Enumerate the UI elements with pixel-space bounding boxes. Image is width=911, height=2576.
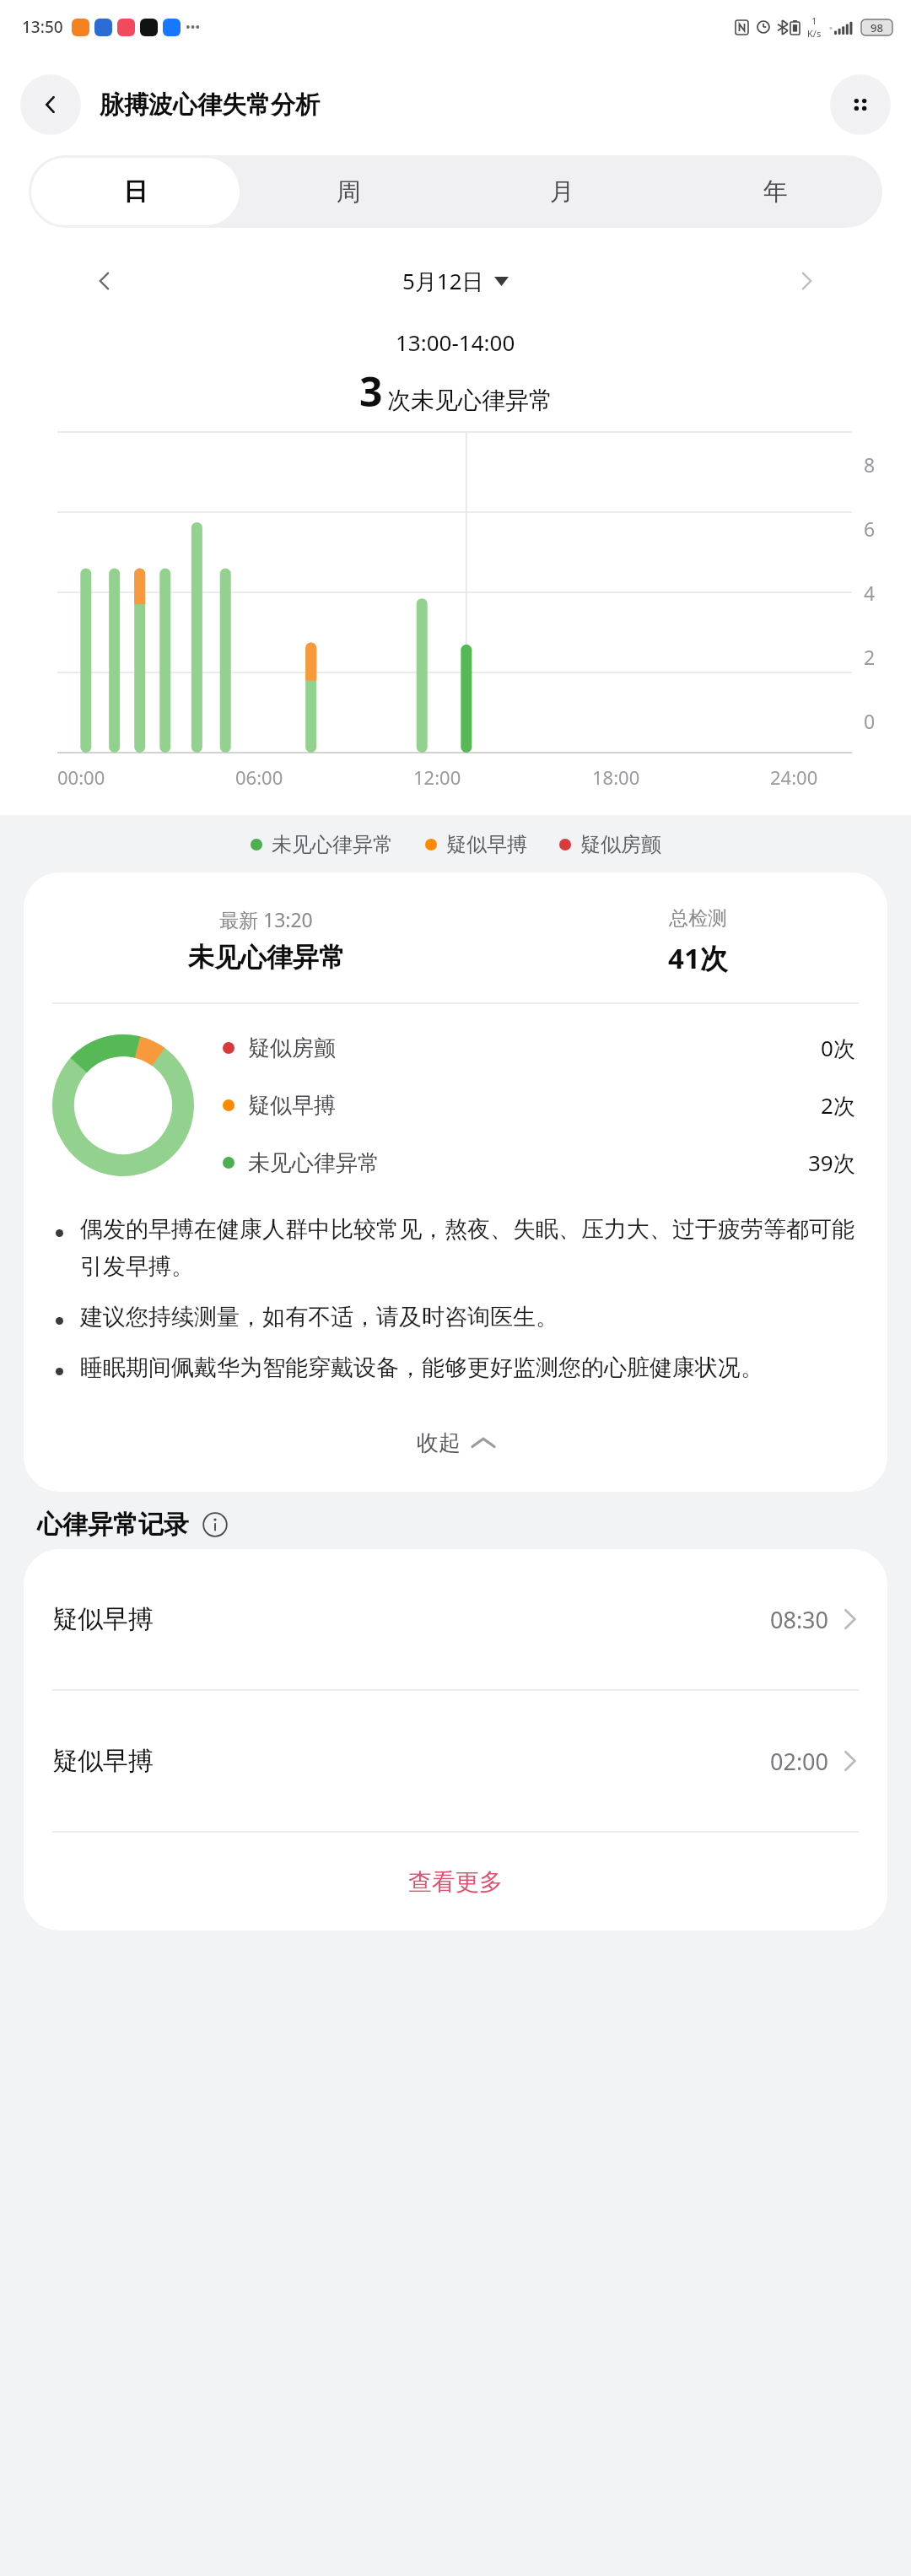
button[interactable]: More options <box>830 74 891 135</box>
staticText: K/s <box>807 27 822 40</box>
staticText: 心律异常记录 <box>37 1509 189 1541</box>
staticText: 睡眠期间佩戴华为智能穿戴设备，能够更好监测您的心脏健康状况。 <box>80 1353 763 1382</box>
staticText: 偶发的早搏在健康人群中比较常见，熬夜、失眠、压力大、过于疲劳等都可能引发早搏。 <box>80 1215 859 1281</box>
staticText: 8 <box>864 451 876 478</box>
button[interactable]: 疑似早搏 <box>24 1549 887 1689</box>
button[interactable]: Back <box>20 74 81 135</box>
button[interactable]: 查看更多 <box>24 1833 887 1931</box>
staticText: 疑似房颤 <box>248 1034 336 1062</box>
staticText: 月 <box>550 176 574 208</box>
staticText: 08:30 <box>770 1604 829 1635</box>
staticText: 06:00 <box>235 764 283 790</box>
staticText: 39次 <box>808 1148 855 1178</box>
button[interactable]: 周 <box>245 158 453 225</box>
staticText: 次未见心律异常 <box>387 386 553 415</box>
button[interactable]: 日 <box>31 158 240 225</box>
staticText: 0次 <box>821 1033 855 1063</box>
staticText: 24:00 <box>770 764 818 790</box>
staticText: 41次 <box>668 939 728 977</box>
staticText: 1 <box>811 14 817 27</box>
staticText: 18:00 <box>592 764 640 790</box>
staticText: 最新 13:20 <box>219 906 313 932</box>
staticText: 6 <box>864 516 876 542</box>
button[interactable]: 月 <box>458 158 666 225</box>
staticText: 0 <box>864 708 876 734</box>
button[interactable]: Info <box>201 1510 229 1539</box>
staticText: 查看更多 <box>408 1867 503 1897</box>
staticText: 13:50 <box>22 16 63 38</box>
staticText: 12:00 <box>413 764 461 790</box>
staticText: 疑似早搏 <box>52 1745 154 1777</box>
staticText: 02:00 <box>770 1746 829 1777</box>
button[interactable]: 疑似早搏 <box>24 1691 887 1831</box>
staticText: 2 <box>864 644 876 670</box>
button[interactable]: 5月12日 <box>402 266 509 296</box>
button[interactable]: Previous day <box>81 257 128 305</box>
staticText: 98 <box>871 20 883 35</box>
staticText: 5月12日 <box>402 266 484 296</box>
staticText: 未见心律异常 <box>248 1149 380 1177</box>
staticText: 疑似早搏 <box>248 1092 336 1120</box>
staticText: 总检测 <box>669 906 727 931</box>
button[interactable]: 年 <box>671 158 880 225</box>
staticText: 13:00-14:00 <box>396 327 515 357</box>
staticText: 疑似房颤 <box>580 832 661 857</box>
staticText: 脉搏波心律失常分析 <box>100 89 320 121</box>
staticText: 3 <box>359 364 383 419</box>
staticText: 收起 <box>417 1429 461 1457</box>
staticText: 日 <box>123 176 148 208</box>
staticText: 2次 <box>821 1090 855 1121</box>
staticText: 年 <box>763 176 788 208</box>
staticText: 周 <box>337 176 361 208</box>
button[interactable]: 收起 <box>24 1416 887 1470</box>
staticText: 未见心律异常 <box>188 941 345 974</box>
staticText: 未见心律异常 <box>272 832 393 857</box>
staticText: 00:00 <box>57 764 105 790</box>
staticText: 建议您持续测量，如有不适，请及时咨询医生。 <box>80 1303 558 1331</box>
staticText: 4 <box>864 580 876 606</box>
staticText: 疑似早搏 <box>52 1603 154 1635</box>
staticText: 疑似早搏 <box>446 832 527 857</box>
button[interactable]: Next day <box>783 257 830 305</box>
